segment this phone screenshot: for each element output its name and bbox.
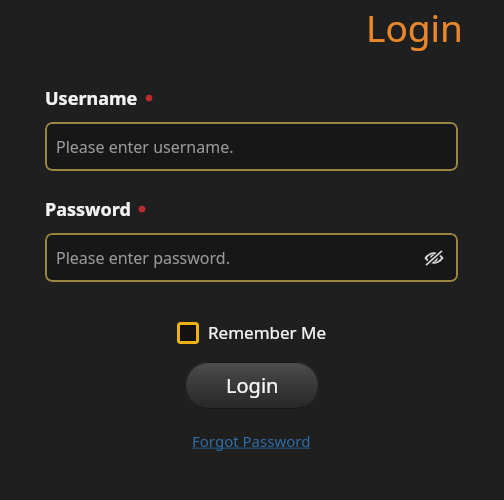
staticText: Password [45,197,131,222]
staticText: Login [226,372,279,399]
staticText: Forgot Password [192,431,311,451]
staticText: Username [45,86,138,111]
staticText: Login [366,2,463,52]
button[interactable]: Remember Me [175,319,329,346]
staticText: Please enter password. [56,247,230,269]
button[interactable]: Please enter password. [45,233,458,282]
staticText: Remember Me [208,321,327,344]
staticText: Please enter username. [56,136,234,158]
button[interactable]: Show password [419,243,449,273]
button[interactable]: Login [185,362,319,409]
button[interactable]: Please enter username. [45,122,458,171]
button[interactable]: Forgot Password [188,429,315,453]
